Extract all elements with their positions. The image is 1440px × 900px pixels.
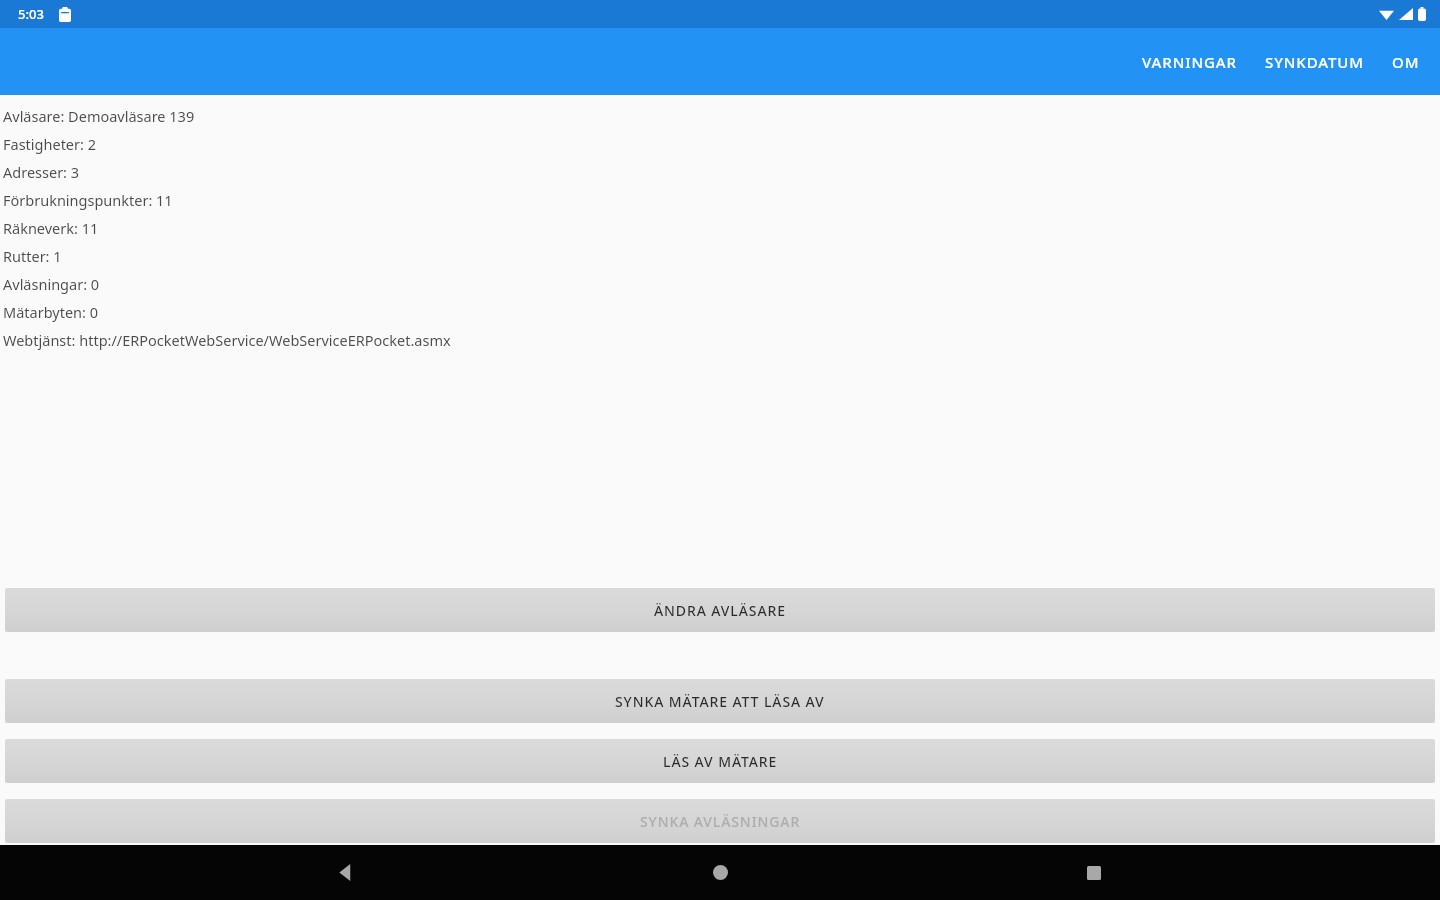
staticText: OM <box>1392 52 1420 72</box>
staticText: LÄS AV MÄTARE <box>663 752 778 771</box>
button[interactable]: Recents <box>1066 845 1122 900</box>
staticText: Rutter: 1 <box>3 246 62 266</box>
staticText: Mätarbyten: 0 <box>3 302 98 322</box>
button[interactable]: LÄS AV MÄTARE <box>5 739 1435 783</box>
staticText: SYNKA AVLÄSNINGAR <box>640 812 801 831</box>
staticText: Adresser: 3 <box>3 162 80 182</box>
staticText: VARNINGAR <box>1142 52 1237 72</box>
staticText: SYNKA MÄTARE ATT LÄSA AV <box>615 692 825 711</box>
staticText: Räkneverk: 11 <box>3 218 99 238</box>
button[interactable]: VARNINGAR <box>1128 42 1251 82</box>
staticText: Avläsare: Demoavläsare 139 <box>3 106 195 126</box>
staticText: Webtjänst: http://ERPocketWebService/Web… <box>3 330 451 350</box>
staticText: 5:03 <box>18 5 44 23</box>
staticText: Avläsningar: 0 <box>3 274 100 294</box>
staticText: Fastigheter: 2 <box>3 134 96 154</box>
button[interactable]: ÄNDRA AVLÄSARE <box>5 588 1435 632</box>
button[interactable]: OM <box>1378 42 1434 82</box>
button[interactable]: SYNKDATUM <box>1251 42 1378 82</box>
staticText: Förbrukningspunkter: 11 <box>3 190 173 210</box>
staticText: SYNKDATUM <box>1265 52 1364 72</box>
staticText: ÄNDRA AVLÄSARE <box>654 601 786 620</box>
button: SYNKA AVLÄSNINGAR <box>5 799 1435 843</box>
button[interactable]: SYNKA MÄTARE ATT LÄSA AV <box>5 679 1435 723</box>
button[interactable]: Home <box>692 845 748 900</box>
button[interactable]: Back <box>318 845 374 900</box>
